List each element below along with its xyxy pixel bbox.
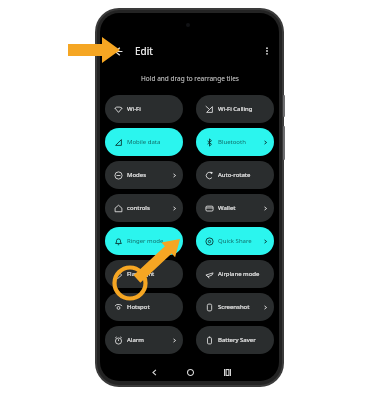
staticText: Bluetooth bbox=[218, 138, 263, 146]
staticText: Flashlight bbox=[127, 270, 177, 278]
button[interactable]: Quick Share bbox=[196, 227, 274, 255]
staticText: Screenshot bbox=[218, 303, 263, 311]
staticText: Mobile data bbox=[127, 138, 177, 146]
staticText: Wi-Fi Calling bbox=[218, 105, 268, 113]
staticText: controls bbox=[127, 204, 172, 212]
button[interactable]: Hotspot bbox=[105, 293, 183, 321]
button[interactable]: Flashlight bbox=[105, 260, 183, 288]
staticText: Hold and drag to rearrange tiles bbox=[141, 74, 239, 83]
button[interactable]: Screenshot bbox=[196, 293, 274, 321]
staticText: Wi-Fi bbox=[127, 105, 177, 113]
staticText: Hotspot bbox=[127, 303, 177, 311]
staticText: Modes bbox=[127, 171, 172, 179]
staticText: Wallet bbox=[218, 204, 263, 212]
button[interactable]: Back bbox=[144, 362, 164, 381]
button[interactable]: Battery Saver bbox=[196, 326, 274, 354]
button[interactable]: Modes bbox=[105, 161, 183, 189]
staticText: Auto-rotate bbox=[218, 171, 268, 179]
button[interactable]: Wi-Fi Calling bbox=[196, 95, 274, 123]
button[interactable]: Wi-Fi bbox=[105, 95, 183, 123]
button[interactable]: More options bbox=[257, 41, 277, 61]
button[interactable]: Wallet bbox=[196, 194, 274, 222]
button[interactable]: Mobile data bbox=[105, 128, 183, 156]
button[interactable]: Alarm bbox=[105, 326, 183, 354]
button[interactable]: Auto-rotate bbox=[196, 161, 274, 189]
staticText: Battery Saver bbox=[218, 336, 268, 344]
staticText: Ringer mode bbox=[127, 237, 177, 245]
button[interactable]: Bluetooth bbox=[196, 128, 274, 156]
button[interactable]: controls bbox=[105, 194, 183, 222]
staticText: Airplane mode bbox=[218, 270, 268, 278]
staticText: Edit bbox=[135, 44, 153, 58]
button[interactable]: Home bbox=[180, 362, 200, 381]
staticText: Alarm bbox=[127, 336, 172, 344]
staticText: Quick Share bbox=[218, 237, 263, 245]
button[interactable]: Recents bbox=[217, 362, 237, 381]
button[interactable]: Ringer mode bbox=[105, 227, 183, 255]
button[interactable]: Back bbox=[108, 41, 128, 61]
button[interactable]: Airplane mode bbox=[196, 260, 274, 288]
